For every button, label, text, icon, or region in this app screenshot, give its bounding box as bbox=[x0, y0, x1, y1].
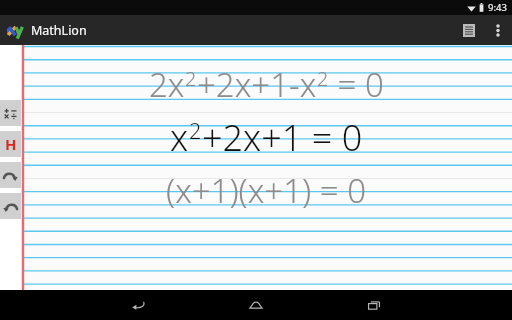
staticText: = 0 bbox=[329, 62, 384, 107]
staticText: 9:43 bbox=[488, 1, 507, 14]
staticText: H bbox=[5, 134, 17, 154]
button[interactable]: MathLion bbox=[7, 22, 87, 39]
button[interactable]: More options bbox=[484, 15, 512, 45]
staticText: 2 bbox=[189, 116, 202, 145]
staticText: 2x bbox=[149, 62, 185, 107]
staticText: (x+1)(x+1) = 0 bbox=[166, 168, 367, 213]
button[interactable]: Home bbox=[236, 290, 276, 320]
button[interactable]: Hint bbox=[0, 131, 21, 157]
button[interactable]: 2x bbox=[20, 59, 512, 109]
staticText: x bbox=[170, 113, 189, 162]
button[interactable]: Step list bbox=[454, 15, 484, 45]
staticText: +2x+1-x bbox=[197, 62, 317, 107]
button[interactable]: x bbox=[20, 109, 512, 165]
button[interactable]: Back bbox=[118, 290, 158, 320]
staticText: 2 bbox=[185, 65, 197, 92]
button[interactable]: Recent apps bbox=[354, 290, 394, 320]
button[interactable]: Redo bbox=[0, 162, 21, 188]
staticText: MathLion bbox=[31, 22, 87, 39]
staticText: +2x+1 = 0 bbox=[202, 113, 363, 162]
button[interactable]: Operations bbox=[0, 100, 21, 126]
staticText: 2 bbox=[317, 65, 329, 92]
button[interactable]: (x+1)(x+1) = 0 bbox=[20, 165, 512, 215]
button[interactable]: Undo bbox=[0, 193, 21, 219]
